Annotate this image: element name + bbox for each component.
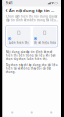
button[interactable]: Luôn hiển thị: [7, 27, 31, 46]
button[interactable]: Recents: [41, 108, 61, 117]
staticText: Ẩn nội dung tập tin đính kèm: [9, 8, 56, 13]
staticText: Chọn cách hiển thị nội dung của các tập …: [6, 15, 58, 22]
staticText: Bị vô hiệu hóa: [34, 41, 55, 44]
staticText: Luôn hiển thị: [9, 41, 29, 44]
button[interactable]: Back: [6, 9, 7, 12]
button[interactable]: Home: [22, 108, 41, 117]
staticText: Tùy chọn này chỉ áp dụng cho tài liệu hi…: [6, 63, 58, 74]
button[interactable]: Back: [2, 108, 22, 117]
staticText: Nội dung của tập tin đính kèm sẽ hiển th…: [6, 50, 56, 61]
staticText: 9:41: [6, 1, 13, 5]
button[interactable]: Bị vô hiệu hóa: [33, 27, 56, 46]
